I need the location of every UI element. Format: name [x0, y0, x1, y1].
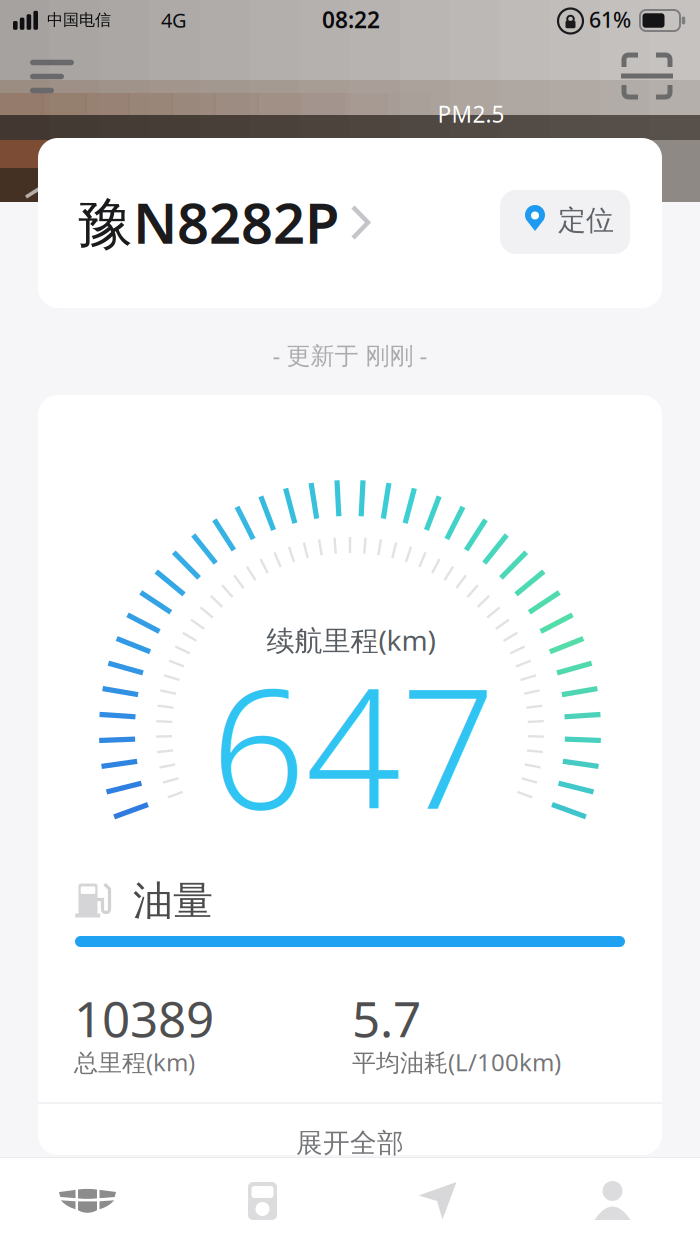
staticText: 647 — [210, 633, 495, 855]
button[interactable] — [175, 1157, 350, 1245]
staticText: 08:22 — [322, 4, 380, 34]
button[interactable] — [15, 48, 85, 104]
staticText: 油量 — [133, 876, 213, 925]
button[interactable]: 豫N8282P — [38, 138, 662, 308]
button[interactable] — [525, 1157, 700, 1245]
button[interactable] — [350, 1157, 525, 1245]
staticText: 展开全部 — [296, 1127, 404, 1159]
staticText: 5.7 — [352, 985, 421, 1051]
staticText: 平均油耗(L/100km) — [352, 1046, 561, 1078]
staticText: PM2.5 — [437, 99, 504, 129]
staticText: 续航里程(km) — [266, 621, 435, 659]
button[interactable] — [0, 1157, 175, 1245]
staticText: - 更新于 刚刚 - — [272, 339, 427, 371]
button[interactable]: 定位 — [500, 190, 630, 254]
staticText: 10389 — [74, 985, 214, 1051]
staticText: 豫N8282P — [77, 185, 339, 259]
staticText: 定位 — [558, 203, 614, 238]
staticText: 中国电信 — [47, 10, 111, 30]
staticText: 61% — [589, 5, 631, 34]
button[interactable] — [617, 48, 677, 104]
staticText: 4G — [161, 7, 187, 33]
staticText: 总里程(km) — [74, 1046, 195, 1078]
button[interactable]: 展开全部 — [38, 1118, 662, 1168]
